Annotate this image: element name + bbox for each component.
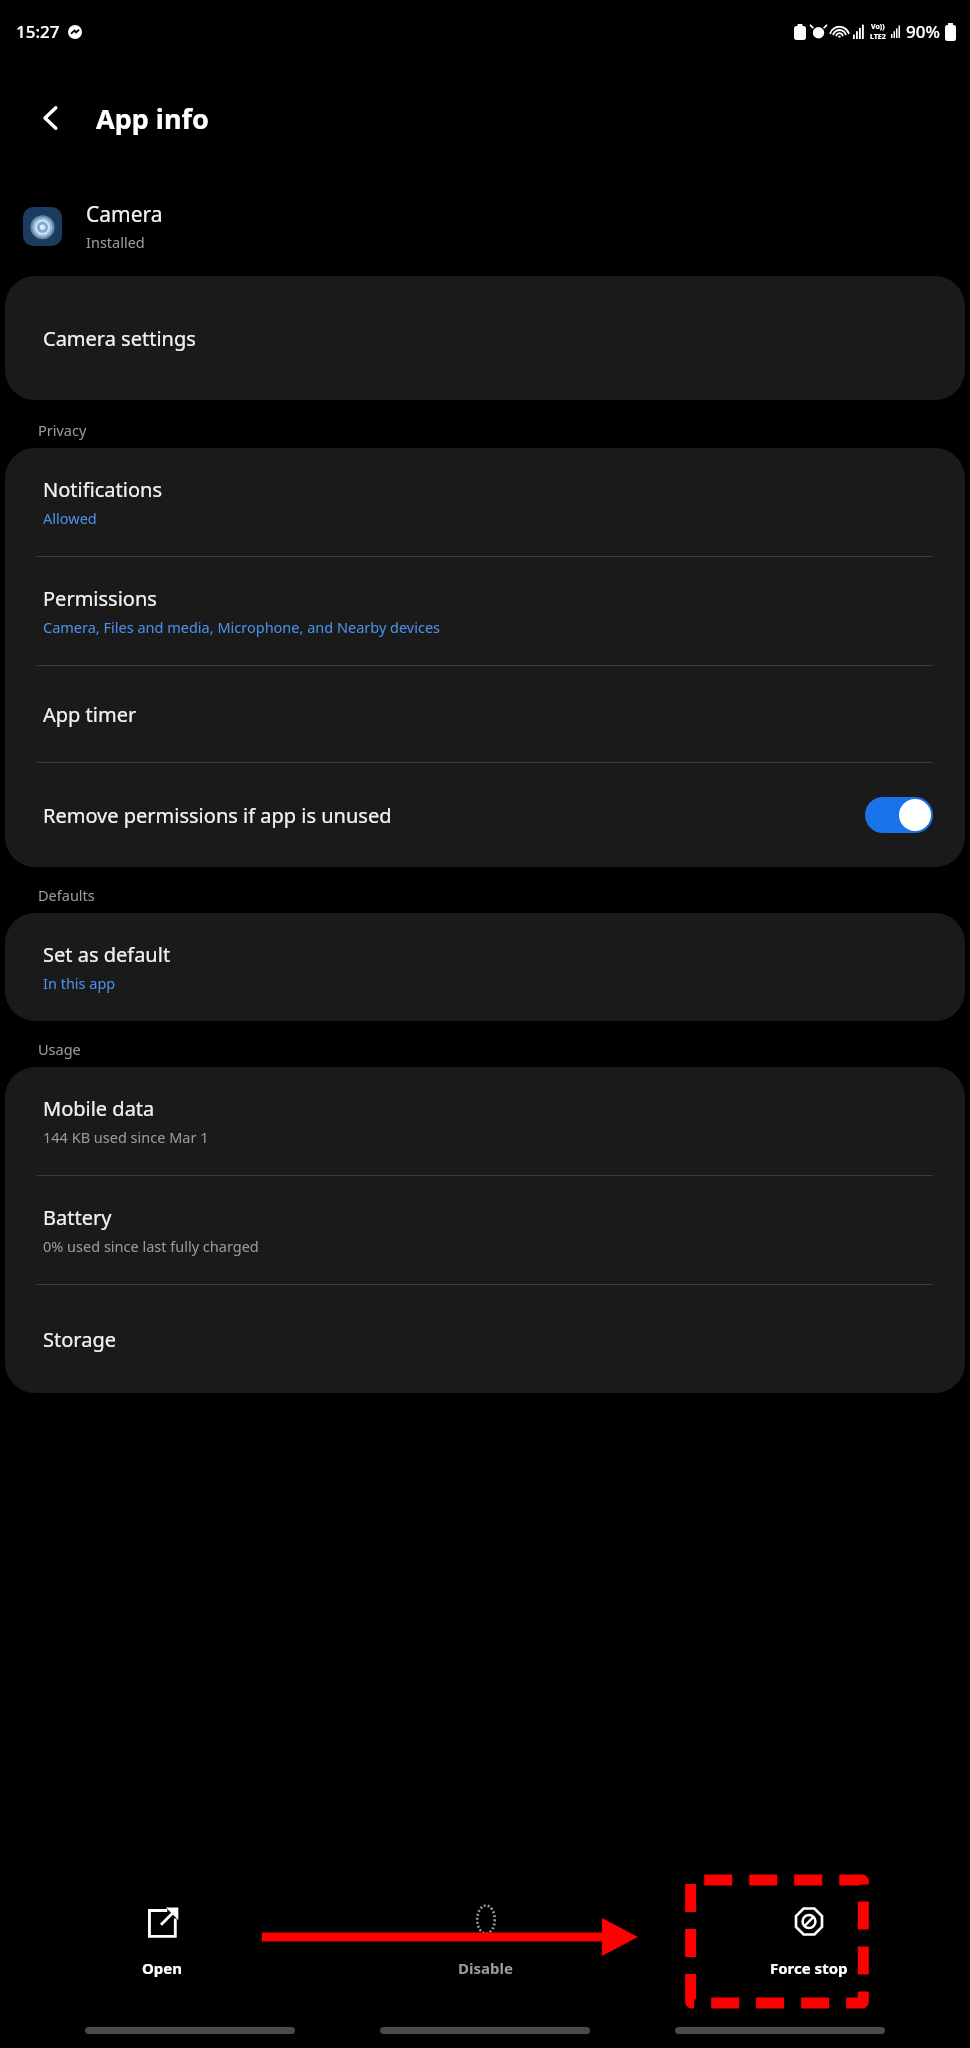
- button[interactable]: Battery: [5, 1176, 965, 1284]
- staticText: 144 KB used since Mar 1: [43, 1127, 209, 1147]
- other: Disable: [467, 1904, 505, 1942]
- staticText: Defaults: [38, 885, 95, 905]
- staticText: Privacy: [38, 420, 87, 440]
- staticText: In this app: [43, 973, 116, 993]
- button[interactable]: Open: [0, 1896, 324, 1978]
- staticText: Open: [142, 1958, 183, 1978]
- button[interactable]: App timer: [5, 666, 965, 762]
- staticText: Notifications: [43, 476, 162, 503]
- button[interactable]: Disable: [324, 1896, 647, 1978]
- staticText: 90%: [906, 20, 940, 43]
- staticText: App timer: [43, 701, 137, 728]
- staticText: Force stop: [770, 1958, 848, 1978]
- button[interactable]: Mobile data: [5, 1067, 965, 1175]
- staticText: Allowed: [43, 508, 97, 528]
- staticText: Remove permissions if app is unused: [43, 802, 392, 829]
- button[interactable]: Camera: [23, 200, 970, 252]
- staticText: 0% used since last fully charged: [43, 1236, 259, 1256]
- button[interactable]: Remove permissions if app is unused togg…: [865, 797, 933, 833]
- staticText: Camera, Files and media, Microphone, and…: [43, 617, 441, 637]
- staticText: Set as default: [43, 941, 171, 968]
- staticText: App info: [96, 100, 209, 137]
- button[interactable]: Force stop: [647, 1896, 970, 1978]
- button[interactable]: Remove permissions if app is unused: [5, 763, 965, 867]
- other: Open: [143, 1904, 181, 1942]
- staticText: Disable: [458, 1958, 513, 1978]
- button[interactable]: Storage: [5, 1285, 965, 1393]
- staticText: Installed: [86, 232, 145, 252]
- staticText: Mobile data: [43, 1095, 155, 1122]
- staticText: Permissions: [43, 585, 157, 612]
- button[interactable]: Permissions: [5, 557, 965, 665]
- staticText: Camera settings: [43, 325, 196, 352]
- staticText: Usage: [38, 1039, 81, 1059]
- staticText: Battery: [43, 1204, 112, 1231]
- button[interactable]: Set as default: [5, 913, 965, 1021]
- button[interactable]: Camera settings: [5, 276, 965, 400]
- button[interactable]: Notifications: [5, 448, 965, 556]
- staticText: Camera: [86, 200, 163, 229]
- other: Force stop: [790, 1904, 828, 1942]
- staticText: LTE2: [870, 32, 886, 42]
- button[interactable]: Back: [20, 87, 82, 149]
- staticText: 15:27: [16, 20, 60, 43]
- staticText: Vo)): [871, 22, 885, 32]
- staticText: Storage: [43, 1326, 116, 1353]
